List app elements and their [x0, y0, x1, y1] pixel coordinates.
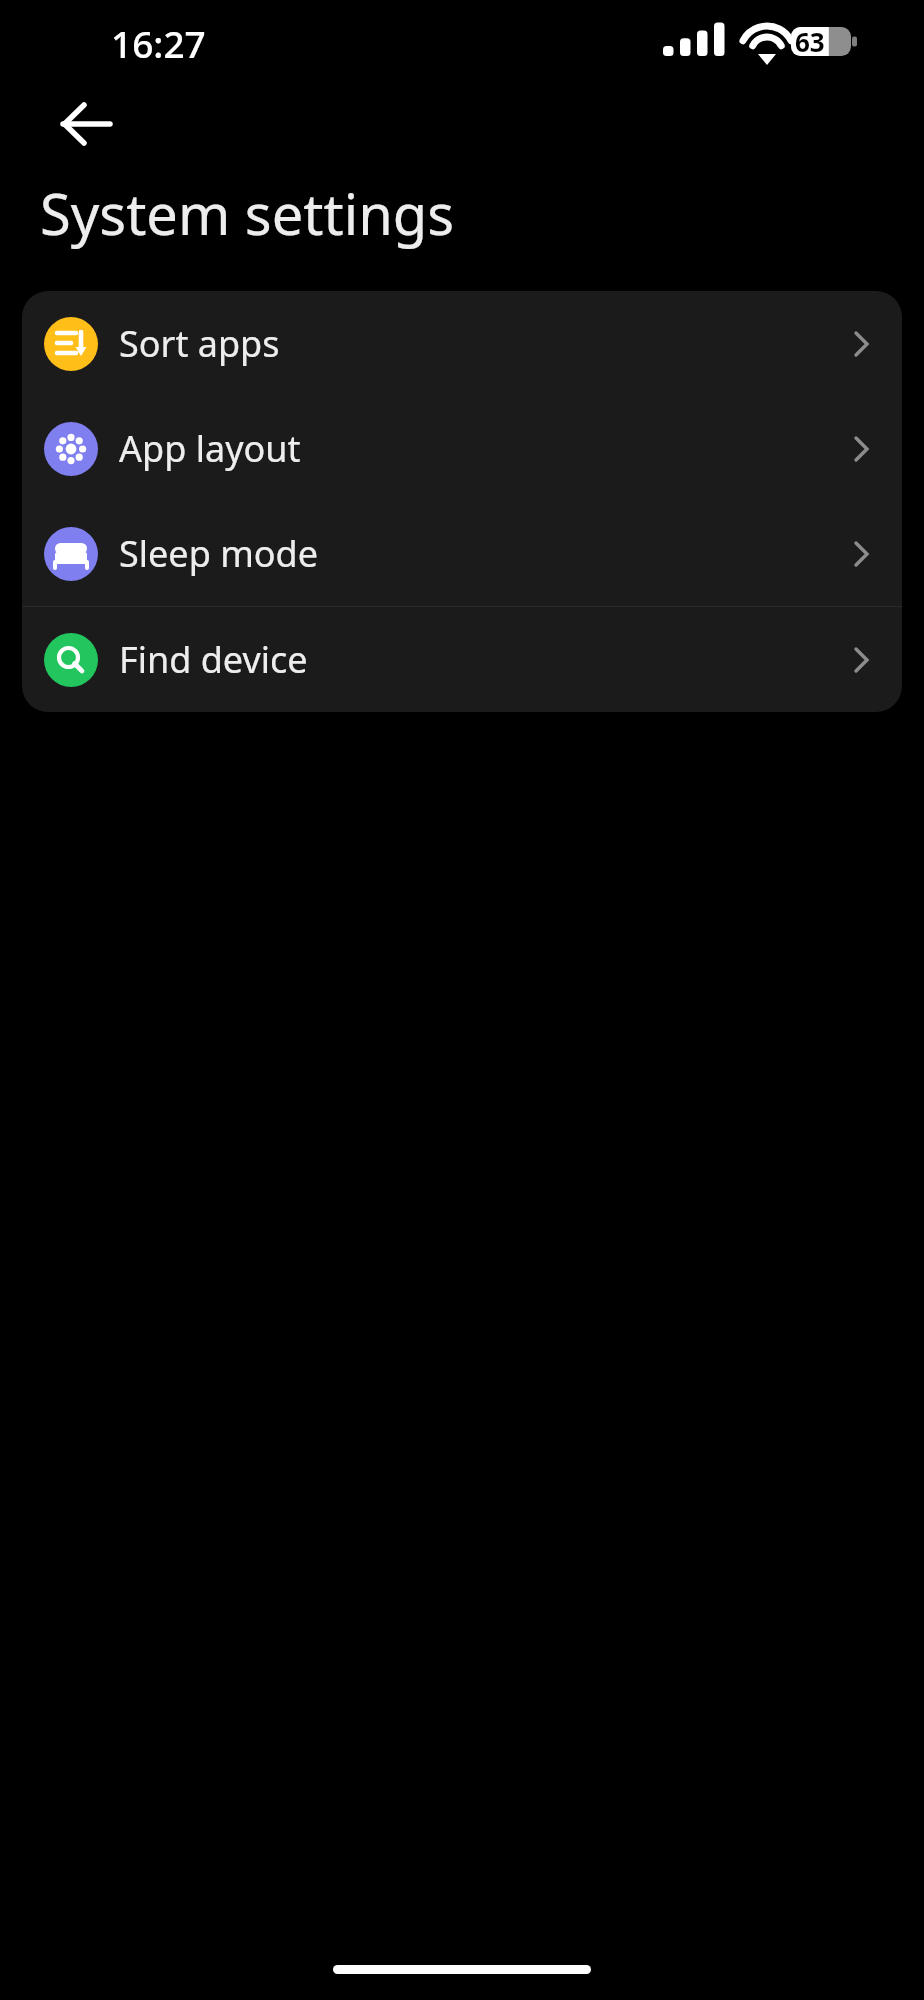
staticText: 63	[795, 24, 825, 59]
button[interactable]: Sleep mode	[22, 501, 902, 606]
button[interactable]: Sort apps	[22, 291, 902, 396]
button[interactable]: App layout	[22, 396, 902, 501]
button[interactable]: Find device	[22, 607, 902, 712]
button[interactable]: Back	[40, 96, 96, 152]
staticText: System settings	[40, 175, 455, 251]
staticText: Sleep mode	[119, 529, 319, 578]
staticText: Sort apps	[119, 319, 280, 368]
staticText: 16:27	[111, 18, 206, 68]
staticText: Find device	[119, 635, 308, 684]
staticText: App layout	[119, 424, 301, 473]
